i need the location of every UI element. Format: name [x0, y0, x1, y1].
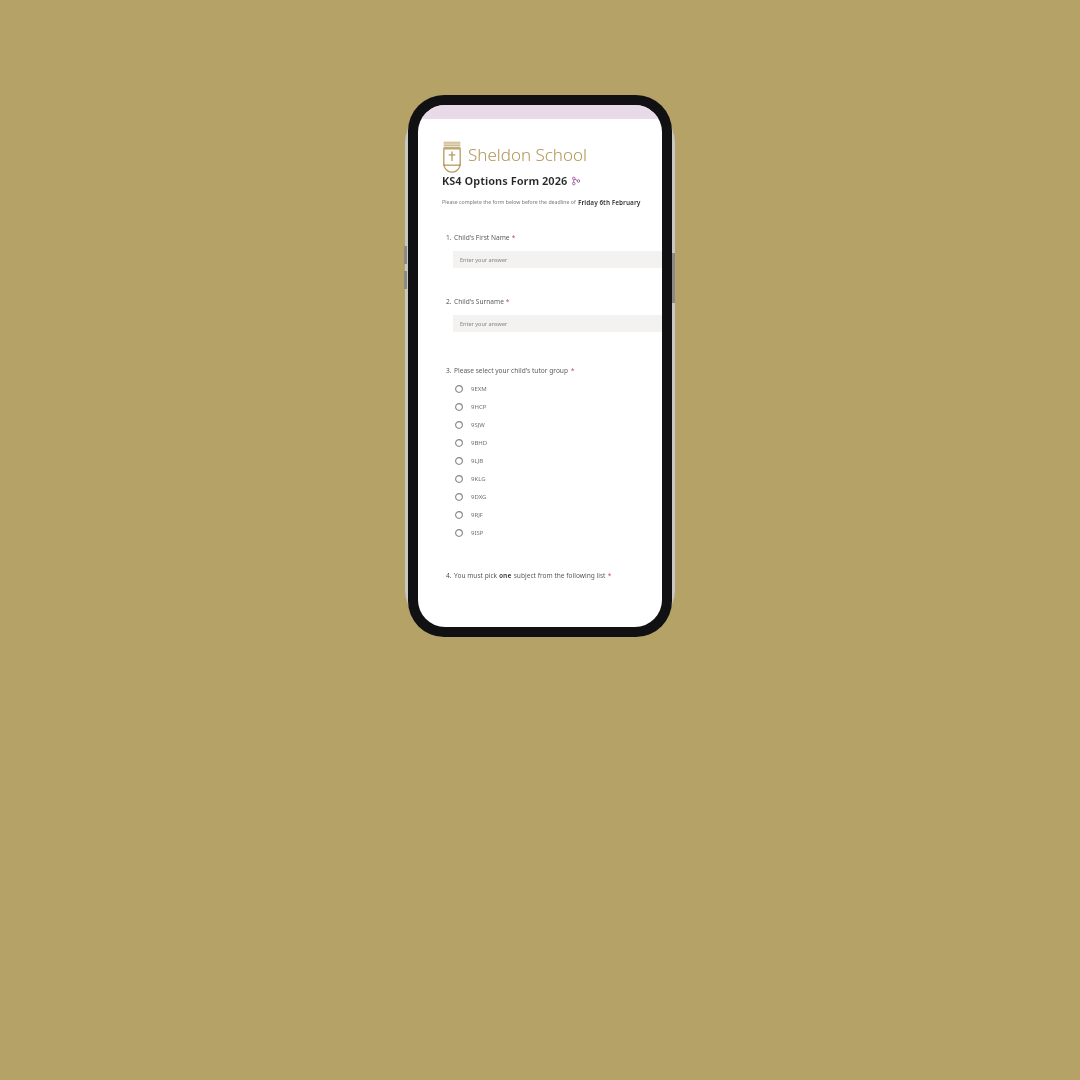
staticText: subject from the following list	[512, 571, 606, 580]
staticText: Enter your answer	[460, 256, 508, 263]
button[interactable]: Enter your answer	[453, 251, 662, 268]
staticText: 3.	[446, 366, 454, 375]
button[interactable]: Enter your answer	[453, 315, 662, 332]
staticText: 9BHD	[471, 439, 488, 447]
staticText: 9LJB	[471, 457, 484, 465]
button[interactable]: 9EXM	[442, 380, 662, 398]
staticText: 2.	[446, 297, 454, 306]
staticText: 9ISP	[471, 529, 484, 537]
staticText: 1.	[446, 233, 454, 242]
staticText: *	[510, 233, 516, 242]
staticText: Please complete the form below before th…	[442, 198, 578, 205]
button[interactable]: 9DXG	[442, 488, 662, 506]
button[interactable]: 9SJW	[442, 416, 662, 434]
staticText: 9SJW	[471, 421, 485, 429]
button[interactable]: 9HCP	[442, 398, 662, 416]
staticText: Friday 6th February	[578, 198, 641, 207]
button[interactable]: 9RJF	[442, 506, 662, 524]
staticText: You must pick	[454, 571, 499, 580]
staticText: 9DXG	[471, 493, 487, 501]
staticText: 9HCP	[471, 403, 487, 411]
staticText: Sheldon School	[468, 143, 587, 166]
staticText: *	[569, 366, 575, 375]
button[interactable]: 9BHD	[442, 434, 662, 452]
staticText: KS4 Options Form 2026	[442, 173, 568, 188]
button[interactable]: 9KLG	[442, 470, 662, 488]
button[interactable]: 9ISP	[442, 524, 662, 542]
staticText: *	[504, 297, 510, 306]
staticText: one	[499, 571, 512, 580]
staticText: Please select your child's tutor group	[454, 366, 569, 375]
button[interactable]: Share form	[572, 177, 580, 185]
staticText: *	[606, 571, 612, 580]
staticText: Child's First Name	[454, 233, 510, 242]
staticText: 9KLG	[471, 475, 486, 483]
staticText: Child's Surname	[454, 297, 504, 306]
staticText: 9EXM	[471, 385, 487, 393]
staticText: 4.	[446, 571, 454, 580]
button[interactable]: 9LJB	[442, 452, 662, 470]
staticText: 9RJF	[471, 511, 483, 519]
staticText: Enter your answer	[460, 320, 508, 327]
